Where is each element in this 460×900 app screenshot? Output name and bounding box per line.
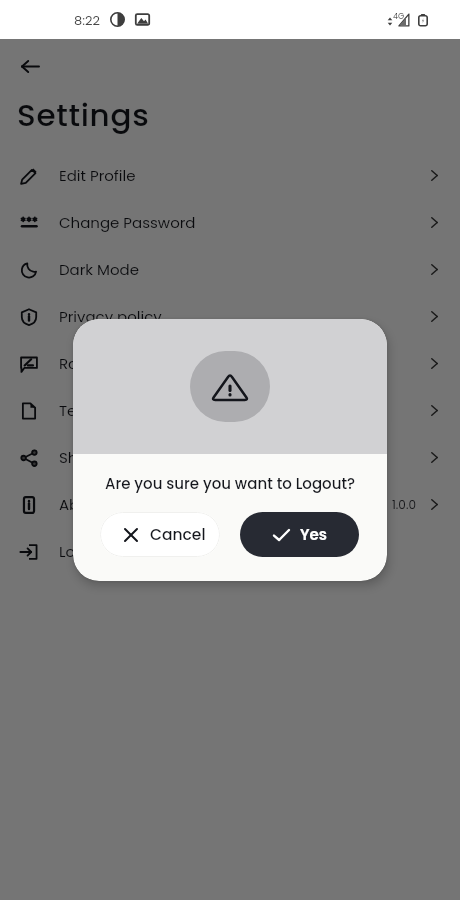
- button[interactable]: Back: [12, 48, 48, 84]
- button[interactable]: Privacy policy: [0, 293, 460, 340]
- staticText: Yes: [300, 524, 327, 545]
- button[interactable]: Edit Profile: [0, 152, 460, 199]
- staticText: Rate us: [59, 353, 115, 374]
- staticText: Are you sure you want to Logout?: [73, 473, 387, 494]
- button[interactable]: Change Password: [0, 199, 460, 246]
- staticText: Edit Profile: [59, 165, 136, 186]
- button[interactable]: Yes: [240, 512, 359, 557]
- staticText: 1.0.0: [392, 496, 416, 513]
- staticText: Settings: [17, 93, 150, 136]
- staticText: Privacy policy: [59, 306, 162, 327]
- button[interactable]: Terms & Conditions: [0, 387, 460, 434]
- button[interactable]: Cancel: [100, 512, 220, 557]
- staticText: 8:22: [74, 11, 100, 29]
- button[interactable]: Dark Mode: [0, 246, 460, 293]
- staticText: Share App: [59, 447, 137, 468]
- staticText: Dark Mode: [59, 259, 140, 280]
- button[interactable]: Logout: [0, 528, 460, 575]
- staticText: Change Password: [59, 212, 196, 233]
- staticText: 4G: [393, 11, 405, 22]
- button[interactable]: Rate us: [0, 340, 460, 387]
- button[interactable]: About us: [0, 481, 460, 528]
- staticText: Terms & Conditions: [59, 400, 206, 421]
- staticText: Cancel: [150, 524, 206, 546]
- staticText: About us: [59, 494, 126, 515]
- staticText: Logout: [59, 541, 110, 562]
- button[interactable]: Share App: [0, 434, 460, 481]
